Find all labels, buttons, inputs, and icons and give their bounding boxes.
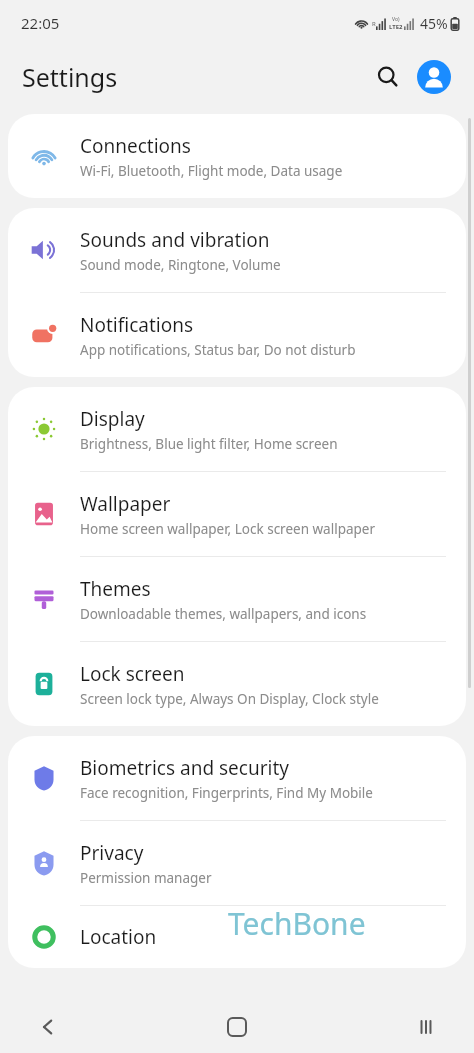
staticText: Sound mode, Ringtone, Volume	[80, 256, 281, 274]
button[interactable]: Home	[209, 1001, 265, 1053]
staticText: Home screen wallpaper, Lock screen wallp…	[80, 520, 376, 538]
staticText: Connections	[80, 133, 191, 159]
button[interactable]: Lock screen	[8, 642, 466, 726]
staticText: Brightness, Blue light filter, Home scre…	[80, 435, 338, 453]
button[interactable]: Location	[8, 906, 466, 968]
button[interactable]: Sounds and vibration	[8, 208, 466, 293]
staticText: Vo)	[392, 16, 400, 23]
button[interactable]: Privacy	[8, 821, 466, 906]
button[interactable]: Back	[20, 1001, 76, 1053]
staticText: Display	[80, 406, 145, 432]
staticText: 45%	[420, 14, 448, 33]
button[interactable]: Account	[414, 57, 454, 97]
button[interactable]: Biometrics and security	[8, 736, 466, 821]
button[interactable]: Notifications	[8, 293, 466, 377]
staticText: Screen lock type, Always On Display, Clo…	[80, 690, 379, 708]
staticText: Wallpaper	[80, 491, 171, 517]
staticText: Biometrics and security	[80, 755, 290, 781]
button[interactable]: Recent apps	[398, 1001, 454, 1053]
staticText: Lock screen	[80, 661, 185, 687]
staticText: App notifications, Status bar, Do not di…	[80, 341, 356, 359]
staticText: Privacy	[80, 840, 144, 866]
staticText: R	[372, 20, 376, 28]
staticText: Permission manager	[80, 869, 212, 887]
staticText: Wi-Fi, Bluetooth, Flight mode, Data usag…	[80, 162, 343, 180]
button[interactable]: Wallpaper	[8, 472, 466, 557]
staticText: Face recognition, Fingerprints, Find My …	[80, 784, 373, 802]
staticText: Themes	[80, 576, 151, 602]
button[interactable]: Search	[366, 55, 410, 99]
button[interactable]: Display	[8, 387, 466, 472]
button[interactable]: Themes	[8, 557, 466, 642]
staticText: 22:05	[21, 13, 60, 33]
staticText: Location	[80, 924, 157, 950]
staticText: Settings	[22, 60, 118, 94]
button[interactable]: Connections	[8, 114, 466, 198]
staticText: Downloadable themes, wallpapers, and ico…	[80, 605, 367, 623]
staticText: Notifications	[80, 312, 194, 338]
staticText: Sounds and vibration	[80, 227, 270, 253]
staticText: LTE2	[389, 23, 403, 31]
staticText: TechBone	[228, 903, 366, 944]
